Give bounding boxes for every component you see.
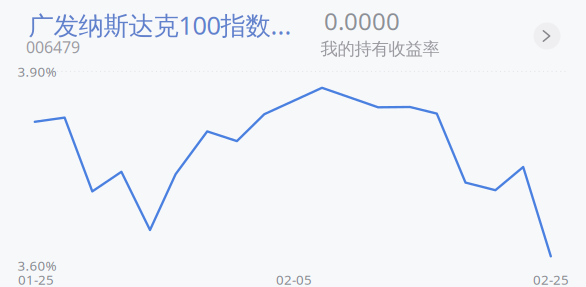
staticText: 3.90% <box>17 62 56 81</box>
staticText: 02-05 <box>276 270 312 287</box>
staticText: 广发纳斯达克100指数... <box>28 8 291 42</box>
staticText: 02-25 <box>533 270 569 287</box>
staticText: 01-25 <box>18 270 54 287</box>
staticText: 006479 <box>26 36 80 58</box>
staticText: 0.0000 <box>324 5 400 37</box>
button[interactable]: 查看详情 <box>533 22 560 49</box>
staticText: 3.60% <box>17 256 56 275</box>
staticText: 我的持有收益率 <box>320 38 439 60</box>
